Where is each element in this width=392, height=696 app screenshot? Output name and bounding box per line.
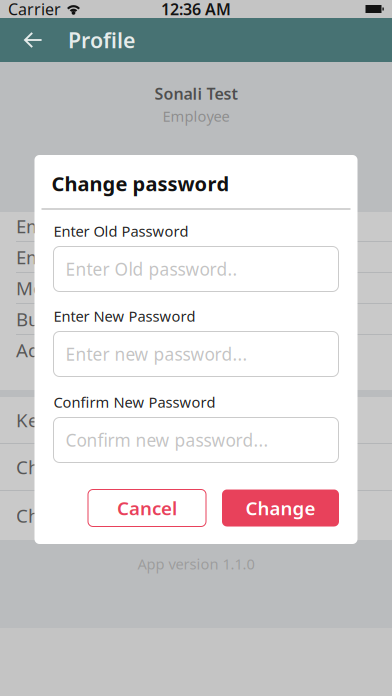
staticText: Change password [51, 170, 229, 197]
staticText: Mobile [16, 276, 76, 300]
staticText: Confirm new password... [65, 428, 268, 451]
staticText: Enter new password... [65, 342, 247, 365]
staticText: Business Unit [16, 307, 138, 331]
staticText: Cancel [117, 496, 177, 520]
staticText: Enter New Password [53, 306, 195, 326]
staticText: Carrier [8, 0, 61, 20]
staticText: Sonali Test [154, 83, 237, 104]
staticText: Profile [68, 26, 135, 54]
button[interactable]: Change password [0, 444, 392, 490]
staticText: Change [245, 496, 315, 520]
button[interactable]: Back [9, 18, 57, 62]
staticText: 12:36 AM [161, 0, 231, 20]
staticText: Confirm New Password [53, 392, 215, 412]
staticText: Employee ID [16, 214, 127, 238]
button[interactable]: Check for updates [0, 491, 392, 540]
staticText: Address [16, 338, 86, 362]
staticText: App version 1.1.0 [137, 554, 254, 573]
button[interactable]: Change [222, 489, 339, 526]
staticText: Employee [162, 106, 229, 126]
staticText: Change password [16, 455, 172, 479]
button[interactable]: Cancel [88, 489, 206, 526]
staticText: Enter Old password.. [65, 257, 237, 280]
staticText: Enter Old Password [53, 221, 188, 241]
button[interactable]: Keep me signed in [0, 397, 392, 443]
staticText: Check for updates [16, 503, 176, 528]
staticText: Keep me signed in [16, 408, 180, 432]
staticText: Email [16, 245, 63, 269]
